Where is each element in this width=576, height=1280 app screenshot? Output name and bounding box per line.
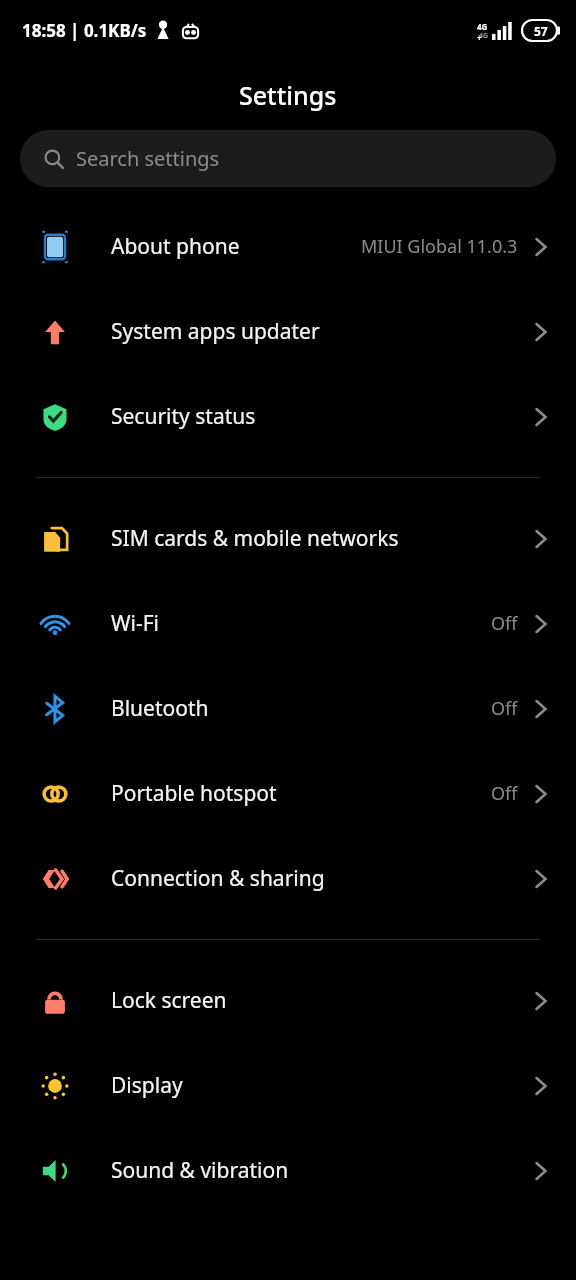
staticText: Sound & vibration	[111, 1156, 289, 1185]
staticText: SIM cards & mobile networks	[111, 524, 399, 553]
button[interactable]: Display	[0, 1043, 576, 1128]
staticText: Off	[491, 781, 518, 806]
staticText: About phone	[111, 232, 240, 261]
staticText: Off	[491, 611, 518, 636]
staticText: Settings	[239, 78, 337, 112]
staticText: Connection & sharing	[111, 864, 325, 893]
staticText: Lock screen	[111, 986, 227, 1015]
staticText: 18:58 | 0.1KB/s	[22, 19, 147, 42]
button[interactable]: Wi-Fi	[0, 581, 576, 666]
staticText: Search settings	[76, 145, 220, 172]
staticText: 4G	[479, 31, 489, 41]
staticText: MIUI Global 11.0.3	[361, 234, 518, 259]
staticText: System apps updater	[111, 317, 320, 346]
staticText: 57	[534, 23, 548, 39]
button[interactable]: SIM cards & mobile networks	[0, 496, 576, 581]
button[interactable]: About phone	[0, 204, 576, 289]
button[interactable]: Sound & vibration	[0, 1128, 576, 1213]
button[interactable]: System apps updater	[0, 289, 576, 374]
staticText: Security status	[111, 402, 256, 431]
staticText: Display	[111, 1071, 183, 1100]
staticText: Portable hotspot	[111, 779, 277, 808]
staticText: Bluetooth	[111, 694, 209, 723]
button[interactable]: Connection & sharing	[0, 836, 576, 921]
button[interactable]: Portable hotspot	[0, 751, 576, 836]
button[interactable]: Bluetooth	[0, 666, 576, 751]
staticText: 4G+	[477, 21, 491, 41]
button[interactable]: Search settings	[20, 130, 556, 187]
staticText: Wi-Fi	[111, 609, 160, 638]
staticText: Off	[491, 696, 518, 721]
button[interactable]: Security status	[0, 374, 576, 459]
button[interactable]: Lock screen	[0, 958, 576, 1043]
